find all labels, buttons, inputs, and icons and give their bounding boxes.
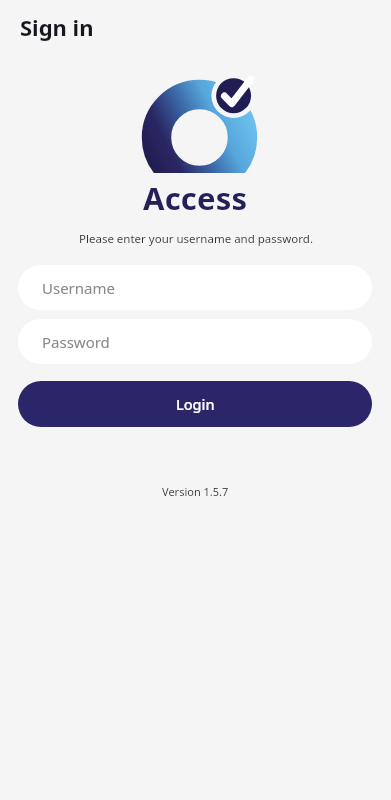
button[interactable]: Login xyxy=(18,381,372,427)
staticText: Password xyxy=(42,332,110,352)
button[interactable]: Password xyxy=(18,319,372,364)
button[interactable]: Username xyxy=(18,265,372,310)
staticText: Please enter your username and password. xyxy=(79,231,313,247)
staticText: Access xyxy=(143,177,248,219)
staticText: Sign in xyxy=(20,12,94,42)
staticText: Login xyxy=(176,394,215,414)
staticText: Version 1.5.7 xyxy=(162,484,229,499)
staticText: Username xyxy=(42,278,115,298)
other: Access logo xyxy=(133,74,268,180)
